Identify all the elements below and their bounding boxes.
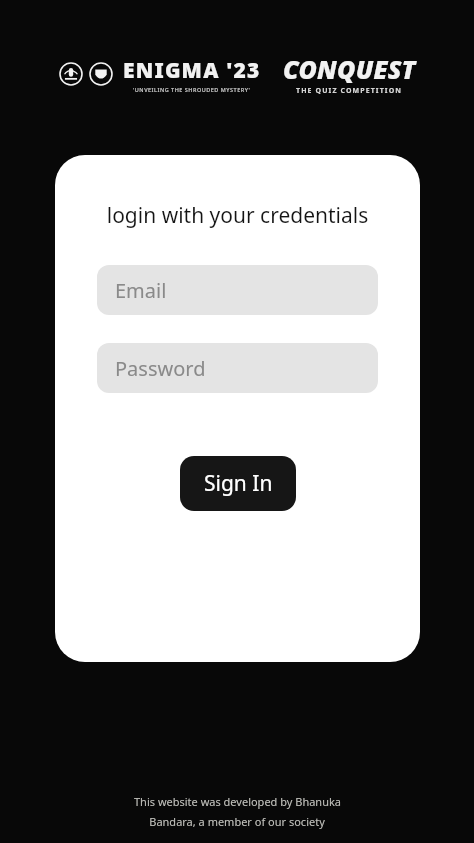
staticText: Bandara, a member of our society (149, 814, 325, 829)
staticText: Password (115, 355, 206, 382)
staticText: login with your credentials (55, 201, 420, 230)
staticText: 'UNVEILING THE SHROUDED MYSTERY' (133, 86, 251, 93)
staticText: Sign In (204, 469, 273, 498)
button[interactable]: Email (97, 265, 378, 315)
staticText: ENIGMA '23 (123, 56, 261, 85)
button[interactable]: Sign In (180, 456, 296, 511)
button[interactable]: Password (97, 343, 378, 393)
staticText: This website was developed by Bhanuka (134, 794, 341, 809)
staticText: Email (115, 277, 167, 304)
staticText: THE QUIZ COMPETITION (296, 86, 403, 96)
staticText: CONQUEST (283, 52, 416, 86)
